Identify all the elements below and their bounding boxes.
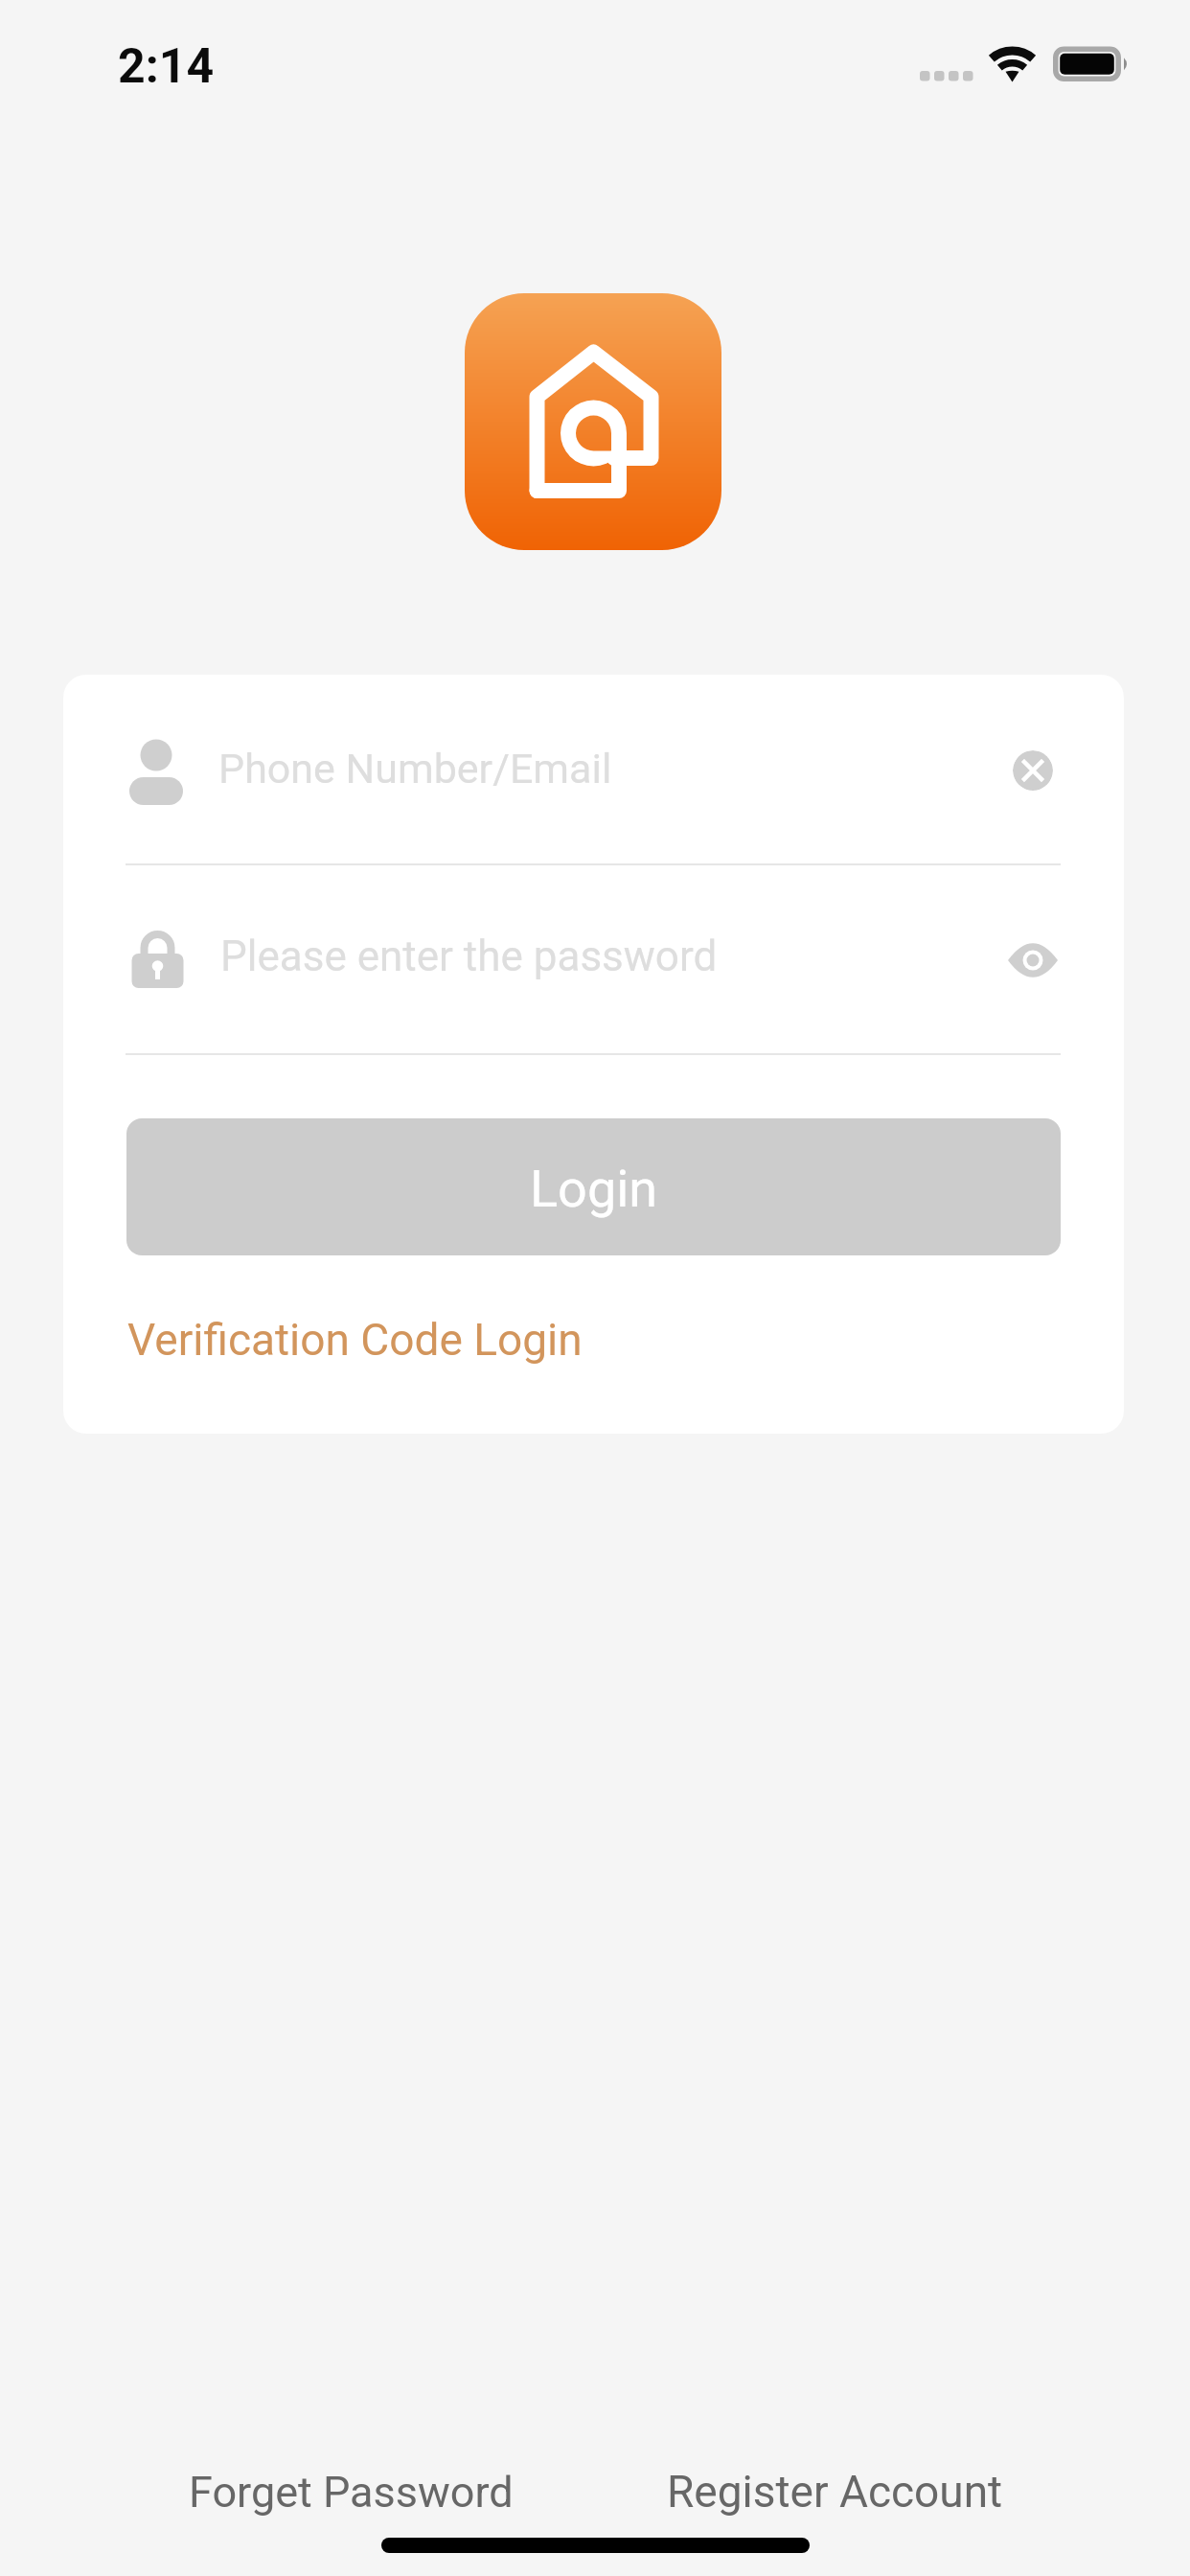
button[interactable]: Show password bbox=[1004, 931, 1062, 989]
staticText: Login bbox=[530, 1159, 658, 1219]
staticText: Phone Number/Email bbox=[218, 745, 612, 793]
button[interactable]: Please enter the password bbox=[126, 899, 1061, 1023]
button[interactable]: Login bbox=[126, 1118, 1061, 1255]
staticText: Register Account bbox=[667, 2466, 1003, 2518]
staticText: Please enter the password bbox=[220, 931, 718, 981]
staticText: Verification Code Login bbox=[127, 1314, 583, 1366]
staticText: Forget Password bbox=[189, 2467, 514, 2518]
button[interactable]: Forget Password bbox=[149, 2439, 561, 2525]
button[interactable]: Clear text bbox=[1013, 750, 1053, 791]
staticText: 2:14 bbox=[118, 38, 215, 95]
button[interactable]: Phone Number/Email bbox=[126, 709, 1061, 834]
button[interactable]: Verification Code Login bbox=[126, 1294, 585, 1380]
button[interactable]: Register Account bbox=[628, 2439, 1044, 2525]
